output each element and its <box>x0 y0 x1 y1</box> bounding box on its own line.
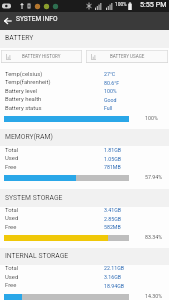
staticText: 22.11GB <box>104 265 125 271</box>
staticText: 3.16GB <box>104 274 122 280</box>
staticText: Temp(celsius) <box>5 71 43 78</box>
staticText: 80.6°F <box>104 80 120 86</box>
staticText: Free <box>5 282 17 289</box>
staticText: Full <box>104 105 113 111</box>
staticText: 27°C <box>104 71 116 77</box>
staticText: 3.41GB <box>104 207 122 213</box>
button[interactable]: Navigate up <box>0 12 15 30</box>
staticText: Battery status <box>5 105 42 112</box>
staticText: 14.30% <box>145 293 163 299</box>
staticText: BATTERY USAGE <box>110 54 145 59</box>
staticText: 582MB <box>104 224 121 230</box>
staticText: Used <box>5 274 19 281</box>
staticText: 57.94% <box>145 174 163 180</box>
staticText: Total <box>5 207 19 214</box>
staticText: Temp(fahrenheit) <box>5 79 51 86</box>
staticText: Used <box>5 215 19 222</box>
staticText: 1.81GB <box>104 147 122 153</box>
staticText: Battery level <box>5 88 38 95</box>
staticText: Free <box>5 164 17 171</box>
staticText: 83.34% <box>145 234 163 240</box>
staticText: 100% <box>104 88 117 94</box>
staticText: 5:55 PM <box>140 0 167 8</box>
staticText: Used <box>5 155 19 162</box>
staticText: 100% <box>115 2 127 8</box>
staticText: BATTERY <box>5 34 34 42</box>
staticText: SYSTEM STORAGE <box>5 194 63 202</box>
staticText: Total <box>5 147 19 154</box>
staticText: INTERNAL STORAGE <box>5 252 69 260</box>
staticText: 100% <box>145 115 158 121</box>
staticText: 2.85GB <box>104 216 122 222</box>
staticText: 18.94GB <box>104 283 125 289</box>
button[interactable]: BATTERY HISTORY <box>1 50 82 63</box>
button[interactable]: BATTERY USAGE <box>86 50 168 63</box>
staticText: Total <box>5 265 19 272</box>
staticText: Battery health <box>5 96 42 103</box>
staticText: SYSTEM INFO <box>16 15 58 23</box>
staticText: MEMORY(RAM) <box>5 133 53 141</box>
staticText: 781MB <box>104 164 121 170</box>
staticText: Good <box>104 97 117 103</box>
staticText: Free <box>5 224 17 231</box>
staticText: 1.05GB <box>104 156 122 162</box>
staticText: BATTERY HISTORY <box>22 54 61 59</box>
